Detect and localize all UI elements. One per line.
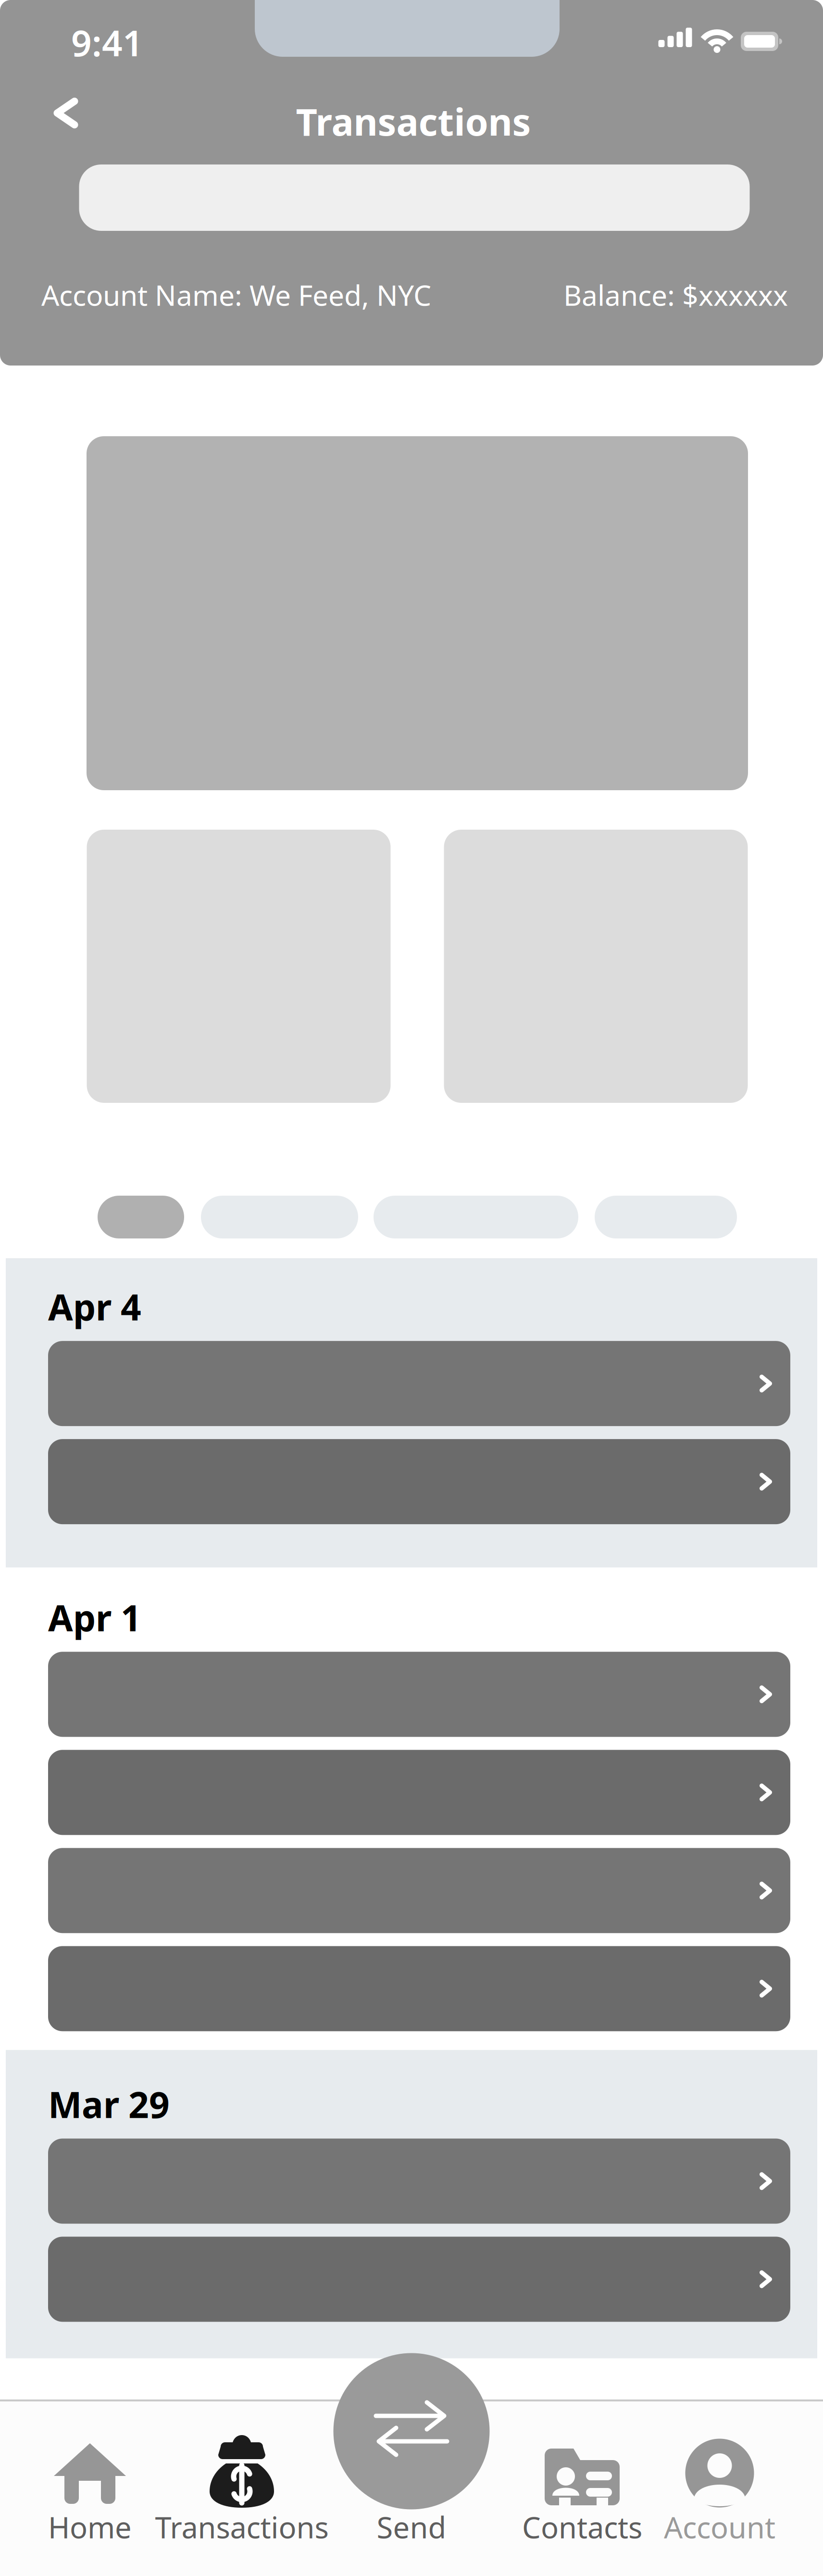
button[interactable]: Filter: expenses <box>374 1196 578 1238</box>
button[interactable]: Transaction detail <box>48 1341 790 1426</box>
staticText: Mar 29 <box>48 2080 170 2128</box>
button[interactable]: Transaction detail <box>48 1652 790 1737</box>
staticText: Transactions <box>296 97 531 146</box>
button[interactable]: Transaction detail <box>48 2139 790 2224</box>
staticText: Apr 1 <box>48 1594 141 1641</box>
button[interactable]: Transaction detail <box>48 1439 790 1524</box>
button[interactable]: Filter: pending <box>595 1196 737 1238</box>
button[interactable]: Transaction detail <box>48 2237 790 2322</box>
staticText: 9:41 <box>71 18 143 66</box>
button[interactable]: Transaction detail <box>48 1946 790 2031</box>
button[interactable]: Transactions <box>162 2467 321 2576</box>
staticText: Account <box>664 2507 775 2547</box>
button[interactable]: All transactions <box>98 1196 184 1238</box>
button[interactable]: Home <box>11 2467 169 2576</box>
staticText: Transactions <box>155 2507 329 2547</box>
staticText: Send <box>377 2507 446 2547</box>
button[interactable]: Transaction detail <box>48 1848 790 1933</box>
button[interactable]: Back <box>35 82 97 144</box>
button[interactable]: Contacts <box>503 2467 661 2576</box>
button[interactable]: Send money <box>333 2353 490 2509</box>
staticText: Contacts <box>522 2507 642 2547</box>
staticText: Apr 4 <box>48 1283 141 1330</box>
button[interactable]: Filter: income <box>201 1196 358 1238</box>
staticText: Balance: $xxxxxx <box>563 276 788 314</box>
staticText: Account Name: We Feed, NYC <box>41 276 431 314</box>
staticText: Home <box>48 2507 132 2547</box>
button[interactable]: Send <box>339 2510 484 2544</box>
button[interactable]: Transaction detail <box>48 1750 790 1835</box>
button[interactable]: Account <box>640 2467 799 2576</box>
